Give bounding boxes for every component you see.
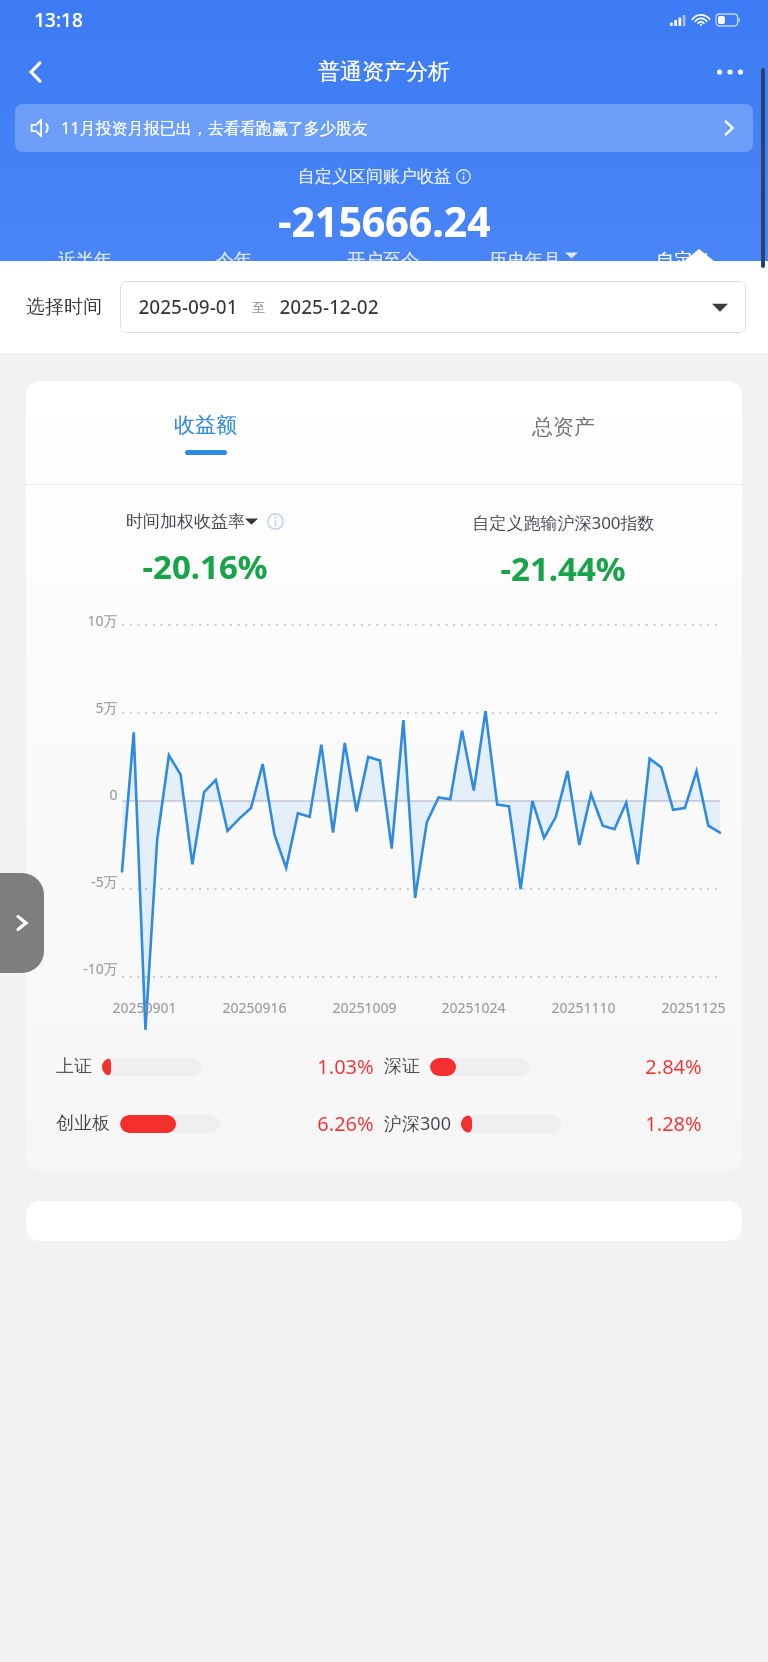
button[interactable]: 沪深300: [384, 1110, 712, 1137]
staticText: 1.03%: [317, 1053, 374, 1080]
button[interactable]: 收益额: [26, 381, 384, 485]
button[interactable]: 创业板: [56, 1110, 384, 1137]
staticText: 创业板: [56, 1112, 110, 1135]
staticText: 近半年: [58, 249, 112, 261]
staticText: 6.26%: [317, 1110, 374, 1137]
button[interactable]: 自定义: [608, 249, 758, 261]
staticText: 上证: [56, 1055, 92, 1078]
staticText: -20.16%: [142, 544, 268, 589]
staticText: 10万: [87, 611, 118, 629]
staticText: 20251110: [551, 998, 616, 1017]
staticText: 自定义区间账户收益: [298, 166, 451, 187]
staticText: 总资产: [532, 414, 595, 440]
button[interactable]: Back: [10, 46, 62, 98]
button[interactable]: 今年: [159, 249, 308, 261]
staticText: 13:18: [34, 7, 83, 33]
button[interactable]: 开户至今: [308, 249, 458, 261]
staticText: -215666.24: [278, 193, 491, 249]
staticText: 沪深300: [384, 1111, 451, 1136]
staticText: 20250916: [222, 998, 287, 1017]
staticText: 11月投资月报已出，去看看跑赢了多少股友: [61, 117, 368, 139]
staticText: 历史年月: [489, 249, 561, 261]
staticText: -21.44%: [500, 546, 626, 591]
button[interactable]: 近半年: [10, 249, 159, 261]
staticText: 时间加权收益率: [126, 511, 245, 532]
staticText: 2.84%: [645, 1053, 702, 1080]
staticText: 2025-09-01: [138, 294, 238, 320]
staticText: 选择时间: [26, 295, 102, 319]
staticText: 自定义跑输沪深300指数: [472, 511, 655, 534]
button[interactable]: 上证: [56, 1053, 384, 1080]
staticText: 0: [109, 785, 118, 803]
staticText: 至: [252, 299, 265, 315]
staticText: 1.28%: [645, 1110, 702, 1137]
staticText: 普通资产分析: [318, 58, 450, 86]
staticText: -5万: [91, 872, 118, 890]
button[interactable]: 总资产: [384, 381, 742, 485]
staticText: 深证: [384, 1055, 420, 1078]
staticText: 今年: [216, 249, 252, 261]
staticText: 20251125: [661, 998, 726, 1017]
staticText: 20251024: [441, 998, 506, 1017]
staticText: 2025-12-02: [279, 294, 379, 320]
staticText: 收益额: [174, 412, 237, 438]
staticText: 自定义: [656, 249, 710, 261]
staticText: -10万: [83, 959, 118, 977]
button[interactable]: More options: [704, 46, 756, 98]
button[interactable]: 历史年月: [458, 249, 608, 261]
staticText: 开户至今: [347, 249, 419, 261]
button[interactable]: 2025-09-01: [120, 281, 746, 333]
button[interactable]: 深证: [384, 1053, 712, 1080]
button[interactable]: 时间加权收益率: [26, 511, 384, 589]
button[interactable]: 11月投资月报已出，去看看跑赢了多少股友: [15, 104, 753, 152]
staticText: 20251009: [332, 998, 397, 1017]
staticText: 5万: [95, 698, 118, 716]
button[interactable]: Expand panel: [0, 873, 44, 973]
staticText: 20250901: [112, 998, 177, 1017]
